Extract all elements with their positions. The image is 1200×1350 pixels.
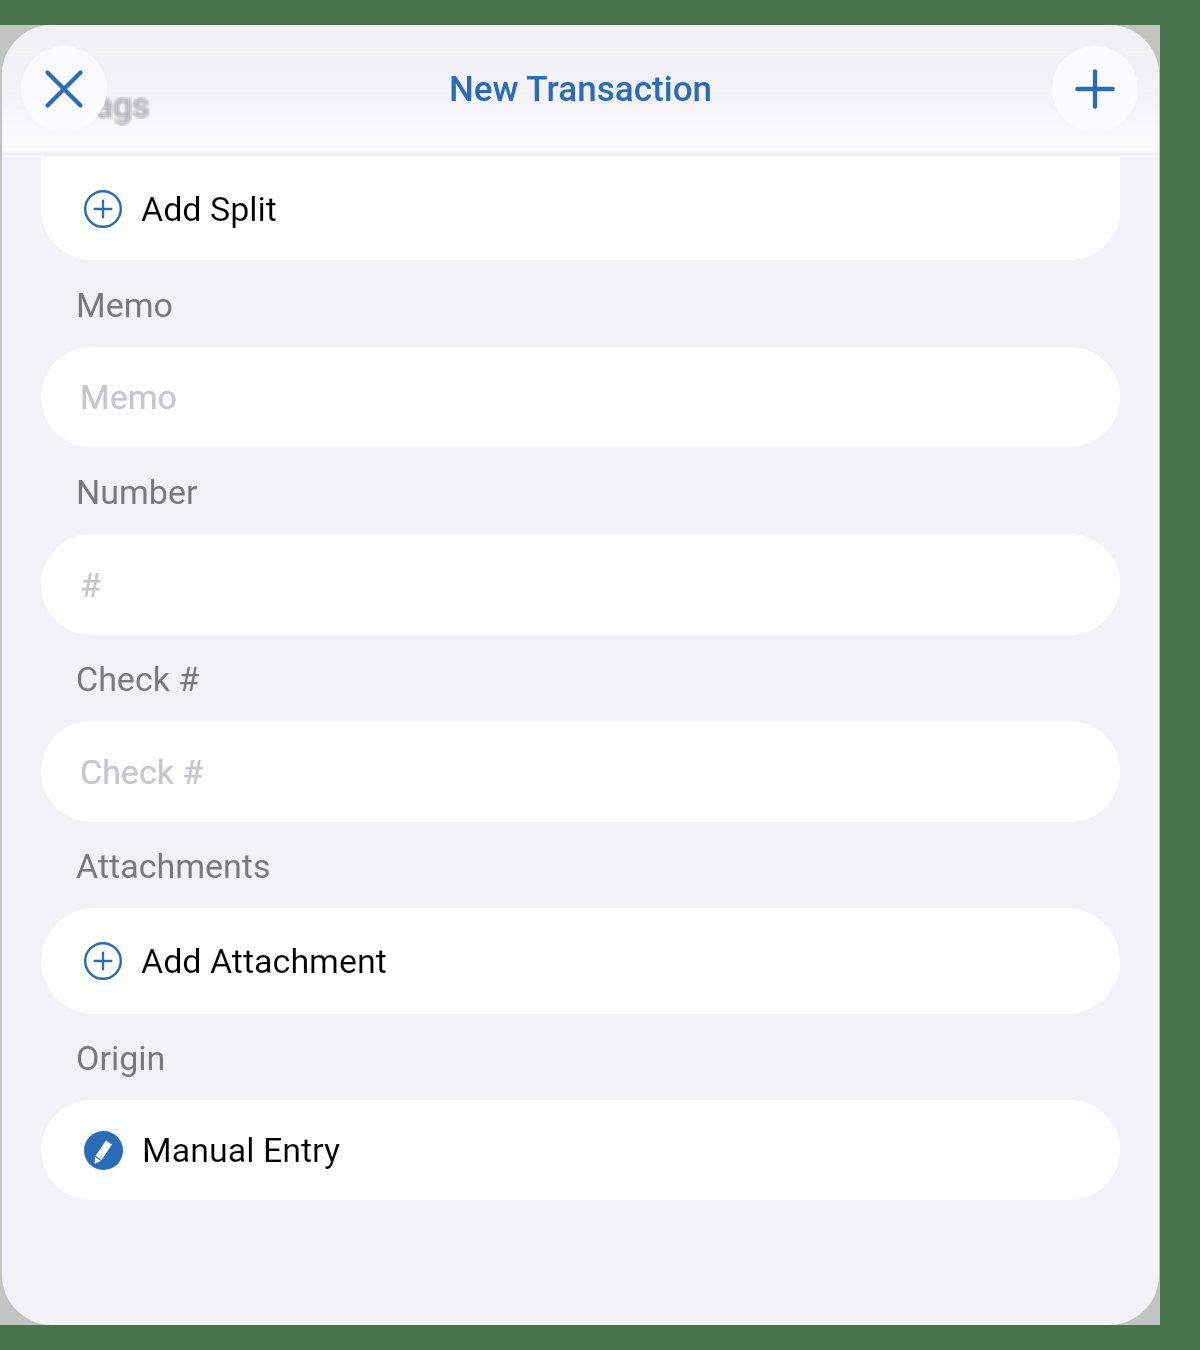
staticText: Tags <box>76 85 150 125</box>
staticText: Tags <box>74 87 148 127</box>
staticText: Memo <box>80 377 177 417</box>
staticText: Tags <box>74 83 148 123</box>
staticText: Tags <box>74 85 148 125</box>
button[interactable]: Add Split <box>41 110 1120 260</box>
staticText: # <box>80 565 101 605</box>
button[interactable]: Add <box>1052 46 1138 132</box>
staticText: Check # <box>76 659 200 699</box>
staticText: Tags <box>76 87 150 127</box>
button[interactable]: Add Attachment <box>41 908 1120 1014</box>
button[interactable]: Close <box>21 46 107 132</box>
button[interactable]: Memo <box>41 347 1120 447</box>
staticText: Tags <box>78 87 152 127</box>
button[interactable]: Manual Entry <box>41 1100 1120 1200</box>
staticText: Attachments <box>76 846 271 886</box>
staticText: Memo <box>76 285 173 325</box>
staticText: Add Split <box>141 189 277 229</box>
staticText: Add Attachment <box>141 941 387 981</box>
staticText: Tags <box>76 83 150 123</box>
staticText: Check # <box>80 752 204 792</box>
staticText: Number <box>76 472 198 512</box>
button[interactable]: Check # <box>41 721 1120 822</box>
staticText: Tags <box>78 83 152 123</box>
staticText: New Transaction <box>2 69 1159 110</box>
staticText: Manual Entry <box>142 1130 341 1170</box>
staticText: Origin <box>76 1038 166 1078</box>
staticText: Tags <box>78 85 152 125</box>
